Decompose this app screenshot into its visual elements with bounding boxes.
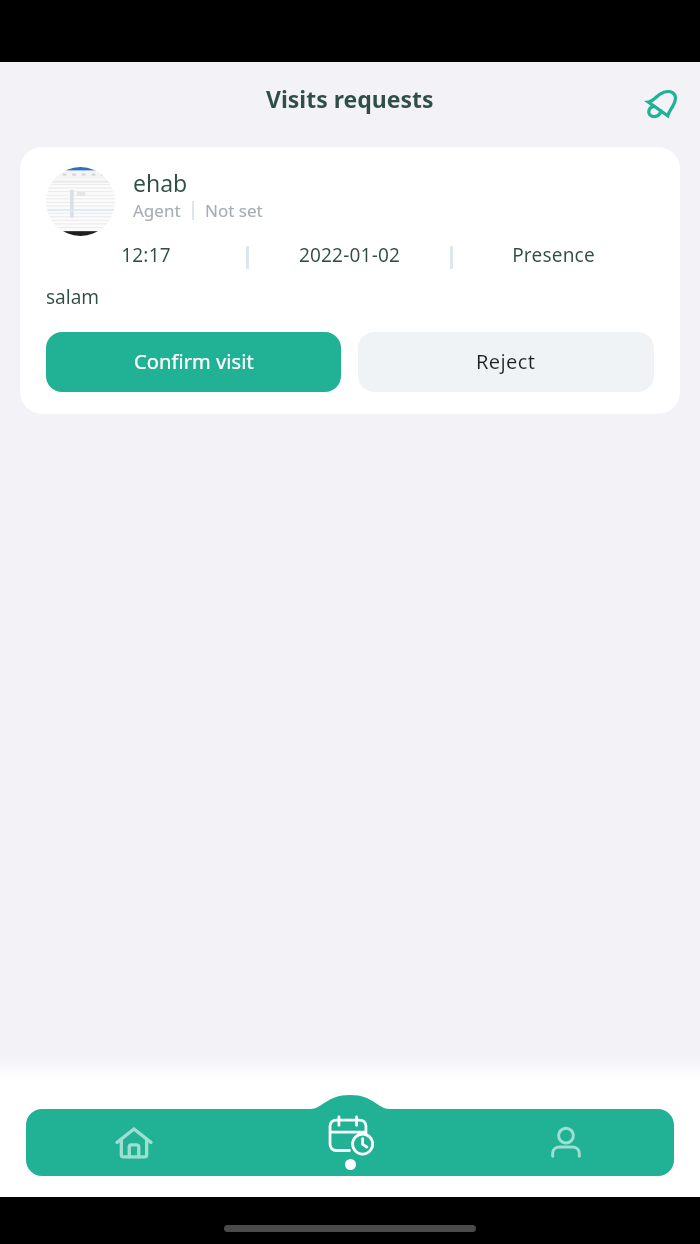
button[interactable]: Home [26,1109,242,1176]
staticText: Confirm visit [134,348,254,375]
button[interactable]: Confirm visit [46,332,341,392]
staticText: salam [46,284,100,310]
staticText: Presence [453,242,654,268]
button[interactable]: Visits [242,1109,458,1176]
button[interactable]: Notifications [638,80,686,128]
staticText: Agent [133,199,181,222]
staticText: Reject [476,348,536,375]
staticText: Visits requests [266,83,434,114]
staticText: ehab [133,167,188,198]
button[interactable]: Profile [458,1109,674,1176]
button[interactable]: Reject [358,332,654,392]
staticText: 2022-01-02 [249,242,450,268]
staticText: Not set [205,199,263,222]
staticText: 12:17 [46,242,246,268]
